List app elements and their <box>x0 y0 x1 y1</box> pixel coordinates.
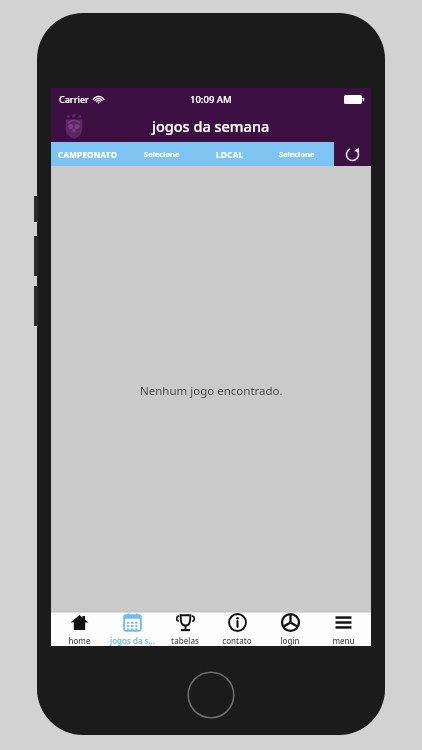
staticText: Nenhum jogo encontrado. <box>140 383 283 399</box>
button[interactable]: home <box>54 612 104 646</box>
button[interactable]: Selecione <box>125 142 199 166</box>
button[interactable]: jogos da s... <box>107 612 157 646</box>
staticText: home <box>68 635 91 646</box>
staticText: menu <box>332 635 355 646</box>
staticText: login <box>280 635 300 646</box>
button[interactable]: LOCAL <box>199 142 260 166</box>
staticText: tabelas <box>171 635 199 646</box>
staticText: Carrier <box>59 93 89 105</box>
staticText: jogos da s... <box>110 635 155 646</box>
button[interactable]: CAMPEONATO <box>51 142 125 166</box>
button[interactable]: Selecione <box>260 142 334 166</box>
button[interactable]: contato <box>212 612 262 646</box>
staticText: LOCAL <box>216 149 244 160</box>
staticText: contato <box>222 635 252 646</box>
button[interactable]: login <box>265 612 315 646</box>
button[interactable]: menu <box>318 612 368 646</box>
button[interactable]: Atualizar <box>334 142 371 166</box>
staticText: Selecione <box>144 149 180 159</box>
staticText: CAMPEONATO <box>58 149 118 160</box>
staticText: 10:09 AM <box>190 93 232 106</box>
button[interactable]: Logo <box>61 113 87 139</box>
button[interactable]: tabelas <box>160 612 210 646</box>
staticText: Selecione <box>279 149 315 159</box>
staticText: jogos da semana <box>152 116 270 136</box>
